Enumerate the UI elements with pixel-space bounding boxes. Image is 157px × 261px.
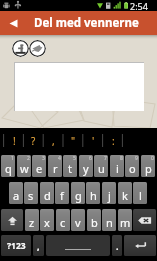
button[interactable]: e bbox=[32, 155, 46, 177]
button[interactable]: p bbox=[141, 155, 155, 177]
button[interactable]: l bbox=[133, 182, 147, 204]
staticText: b bbox=[91, 215, 98, 230]
staticText: 6 bbox=[89, 155, 92, 162]
button[interactable]: a bbox=[9, 182, 23, 204]
staticText: k bbox=[122, 188, 128, 203]
button[interactable]: Back bbox=[0, 11, 26, 35]
button[interactable]: r bbox=[48, 155, 62, 177]
button[interactable]: ?123 bbox=[1, 235, 31, 256]
staticText: e bbox=[36, 161, 43, 176]
staticText: l bbox=[139, 188, 142, 203]
staticText: 5 bbox=[73, 155, 76, 162]
staticText: y bbox=[83, 161, 89, 176]
button[interactable]: i bbox=[110, 155, 124, 177]
staticText: x bbox=[44, 215, 50, 230]
staticText: m bbox=[120, 215, 131, 230]
staticText: z bbox=[29, 215, 35, 230]
button[interactable]: t bbox=[63, 155, 77, 177]
button[interactable]: ! bbox=[4, 128, 24, 154]
button[interactable]: Space bbox=[46, 235, 110, 256]
staticText: 4 bbox=[58, 155, 61, 162]
staticText: t bbox=[68, 161, 72, 176]
staticText: f bbox=[60, 188, 64, 203]
button[interactable]: , bbox=[43, 128, 63, 154]
staticText: ?123 bbox=[7, 240, 26, 252]
button[interactable]: m bbox=[118, 209, 132, 231]
staticText: , bbox=[52, 134, 55, 148]
staticText: 3 bbox=[42, 155, 45, 162]
button[interactable]: q bbox=[1, 155, 15, 177]
staticText: r bbox=[53, 161, 58, 176]
staticText: 8 bbox=[120, 155, 123, 162]
staticText: w bbox=[20, 161, 29, 176]
staticText: 0 bbox=[151, 155, 154, 162]
staticText: ' bbox=[92, 134, 95, 148]
button[interactable]: v bbox=[71, 209, 85, 231]
button[interactable]: c bbox=[56, 209, 70, 231]
staticText: i bbox=[116, 161, 119, 176]
button[interactable]: Shift bbox=[1, 209, 23, 231]
button[interactable]: x bbox=[40, 209, 54, 231]
staticText: p bbox=[145, 161, 152, 176]
button[interactable]: , bbox=[33, 235, 44, 256]
staticText: n bbox=[106, 215, 113, 230]
button[interactable]: Message bbox=[14, 62, 144, 111]
staticText: 9 bbox=[135, 155, 138, 162]
button[interactable]: u bbox=[94, 155, 108, 177]
button[interactable]: Share on Facebook bbox=[12, 40, 29, 57]
button[interactable]: : bbox=[103, 128, 123, 154]
staticText: v bbox=[75, 215, 81, 230]
staticText: : bbox=[112, 134, 115, 148]
staticText: 1 bbox=[11, 155, 14, 162]
staticText: d bbox=[44, 188, 51, 203]
staticText: ? bbox=[31, 134, 36, 148]
button[interactable]: Share on Twitter bbox=[29, 40, 46, 57]
button[interactable]: y bbox=[79, 155, 93, 177]
staticText: j bbox=[108, 188, 111, 203]
button[interactable]: . bbox=[112, 235, 122, 256]
button[interactable]: w bbox=[17, 155, 31, 177]
button[interactable]: s bbox=[24, 182, 38, 204]
staticText: 2:54 bbox=[130, 0, 148, 11]
staticText: s bbox=[28, 188, 34, 203]
button[interactable]: j bbox=[102, 182, 116, 204]
staticText: c bbox=[60, 215, 66, 230]
staticText: . bbox=[116, 240, 119, 252]
staticText: " bbox=[71, 134, 76, 148]
button[interactable]: ' bbox=[83, 128, 103, 154]
staticText: g bbox=[75, 188, 82, 203]
staticText: h bbox=[90, 188, 97, 203]
button[interactable]: " bbox=[63, 128, 83, 154]
button[interactable]: Backspace bbox=[133, 209, 156, 231]
staticText: 2 bbox=[27, 155, 30, 162]
button[interactable]: n bbox=[102, 209, 116, 231]
button[interactable]: g bbox=[71, 182, 85, 204]
button[interactable]: h bbox=[86, 182, 100, 204]
button[interactable]: f bbox=[55, 182, 69, 204]
button[interactable]: d bbox=[40, 182, 54, 204]
button[interactable]: b bbox=[87, 209, 101, 231]
staticText: , bbox=[37, 240, 40, 252]
button[interactable]: o bbox=[125, 155, 139, 177]
staticText: a bbox=[13, 188, 20, 203]
button[interactable]: k bbox=[118, 182, 132, 204]
button[interactable]: ? bbox=[23, 128, 43, 154]
staticText: q bbox=[5, 161, 12, 176]
staticText: u bbox=[98, 161, 105, 176]
staticText: Del med vennerne bbox=[34, 15, 139, 31]
staticText: 7 bbox=[104, 155, 107, 162]
button[interactable]: z bbox=[25, 209, 39, 231]
staticText: o bbox=[129, 161, 136, 176]
staticText: ! bbox=[13, 134, 16, 148]
button[interactable]: Enter bbox=[124, 235, 156, 256]
